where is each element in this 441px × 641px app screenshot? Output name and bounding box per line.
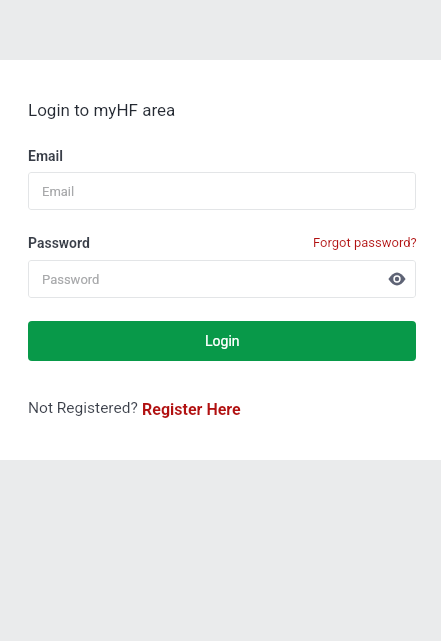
button[interactable]: Show password <box>384 266 410 292</box>
staticText: Login to myHF area <box>28 100 176 120</box>
staticText: Email <box>28 148 63 164</box>
button[interactable]: Register Here <box>142 400 241 419</box>
staticText: Password <box>28 235 90 251</box>
staticText: Email <box>42 184 75 199</box>
staticText: Forgot password? <box>313 235 417 250</box>
staticText: Register Here <box>142 400 241 419</box>
button[interactable]: Login <box>28 321 416 361</box>
staticText: Not Registered? <box>28 399 138 417</box>
button[interactable]: Forgot password? <box>313 235 417 250</box>
button[interactable]: Password <box>28 260 416 298</box>
staticText: Password <box>42 272 100 287</box>
button[interactable]: Email <box>28 172 416 210</box>
staticText: Login <box>205 333 240 349</box>
